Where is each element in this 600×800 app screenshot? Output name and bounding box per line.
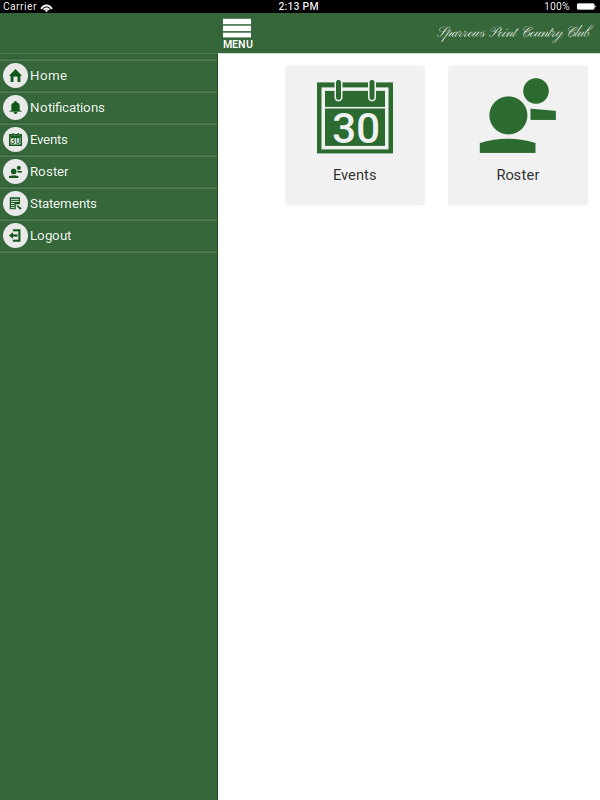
staticText: Logout <box>30 228 71 243</box>
button[interactable]: Notifications <box>0 92 217 122</box>
button[interactable]: 30 <box>0 124 217 154</box>
staticText: 100% <box>544 0 570 13</box>
button[interactable]: Roster <box>0 156 217 186</box>
staticText: MENU <box>223 38 253 50</box>
button[interactable]: Home <box>0 60 217 90</box>
staticText: Home <box>30 68 67 83</box>
button[interactable]: 30 <box>285 65 425 205</box>
staticText: Sparrows Point Country Club <box>437 24 590 42</box>
button[interactable]: Logout <box>0 220 217 250</box>
staticText: Carrier <box>3 0 37 13</box>
button[interactable]: Roster <box>448 65 588 205</box>
staticText: 2:13 PM <box>278 0 318 13</box>
staticText: Statements <box>30 196 97 211</box>
staticText: 30 <box>10 136 20 146</box>
staticText: Events <box>333 166 377 183</box>
staticText: Notifications <box>30 100 105 115</box>
staticText: 30 <box>332 103 380 153</box>
staticText: Roster <box>30 164 69 179</box>
staticText: Roster <box>496 166 539 183</box>
button[interactable]: Menu <box>223 13 253 53</box>
staticText: Events <box>30 132 68 147</box>
button[interactable]: Statements <box>0 188 217 218</box>
